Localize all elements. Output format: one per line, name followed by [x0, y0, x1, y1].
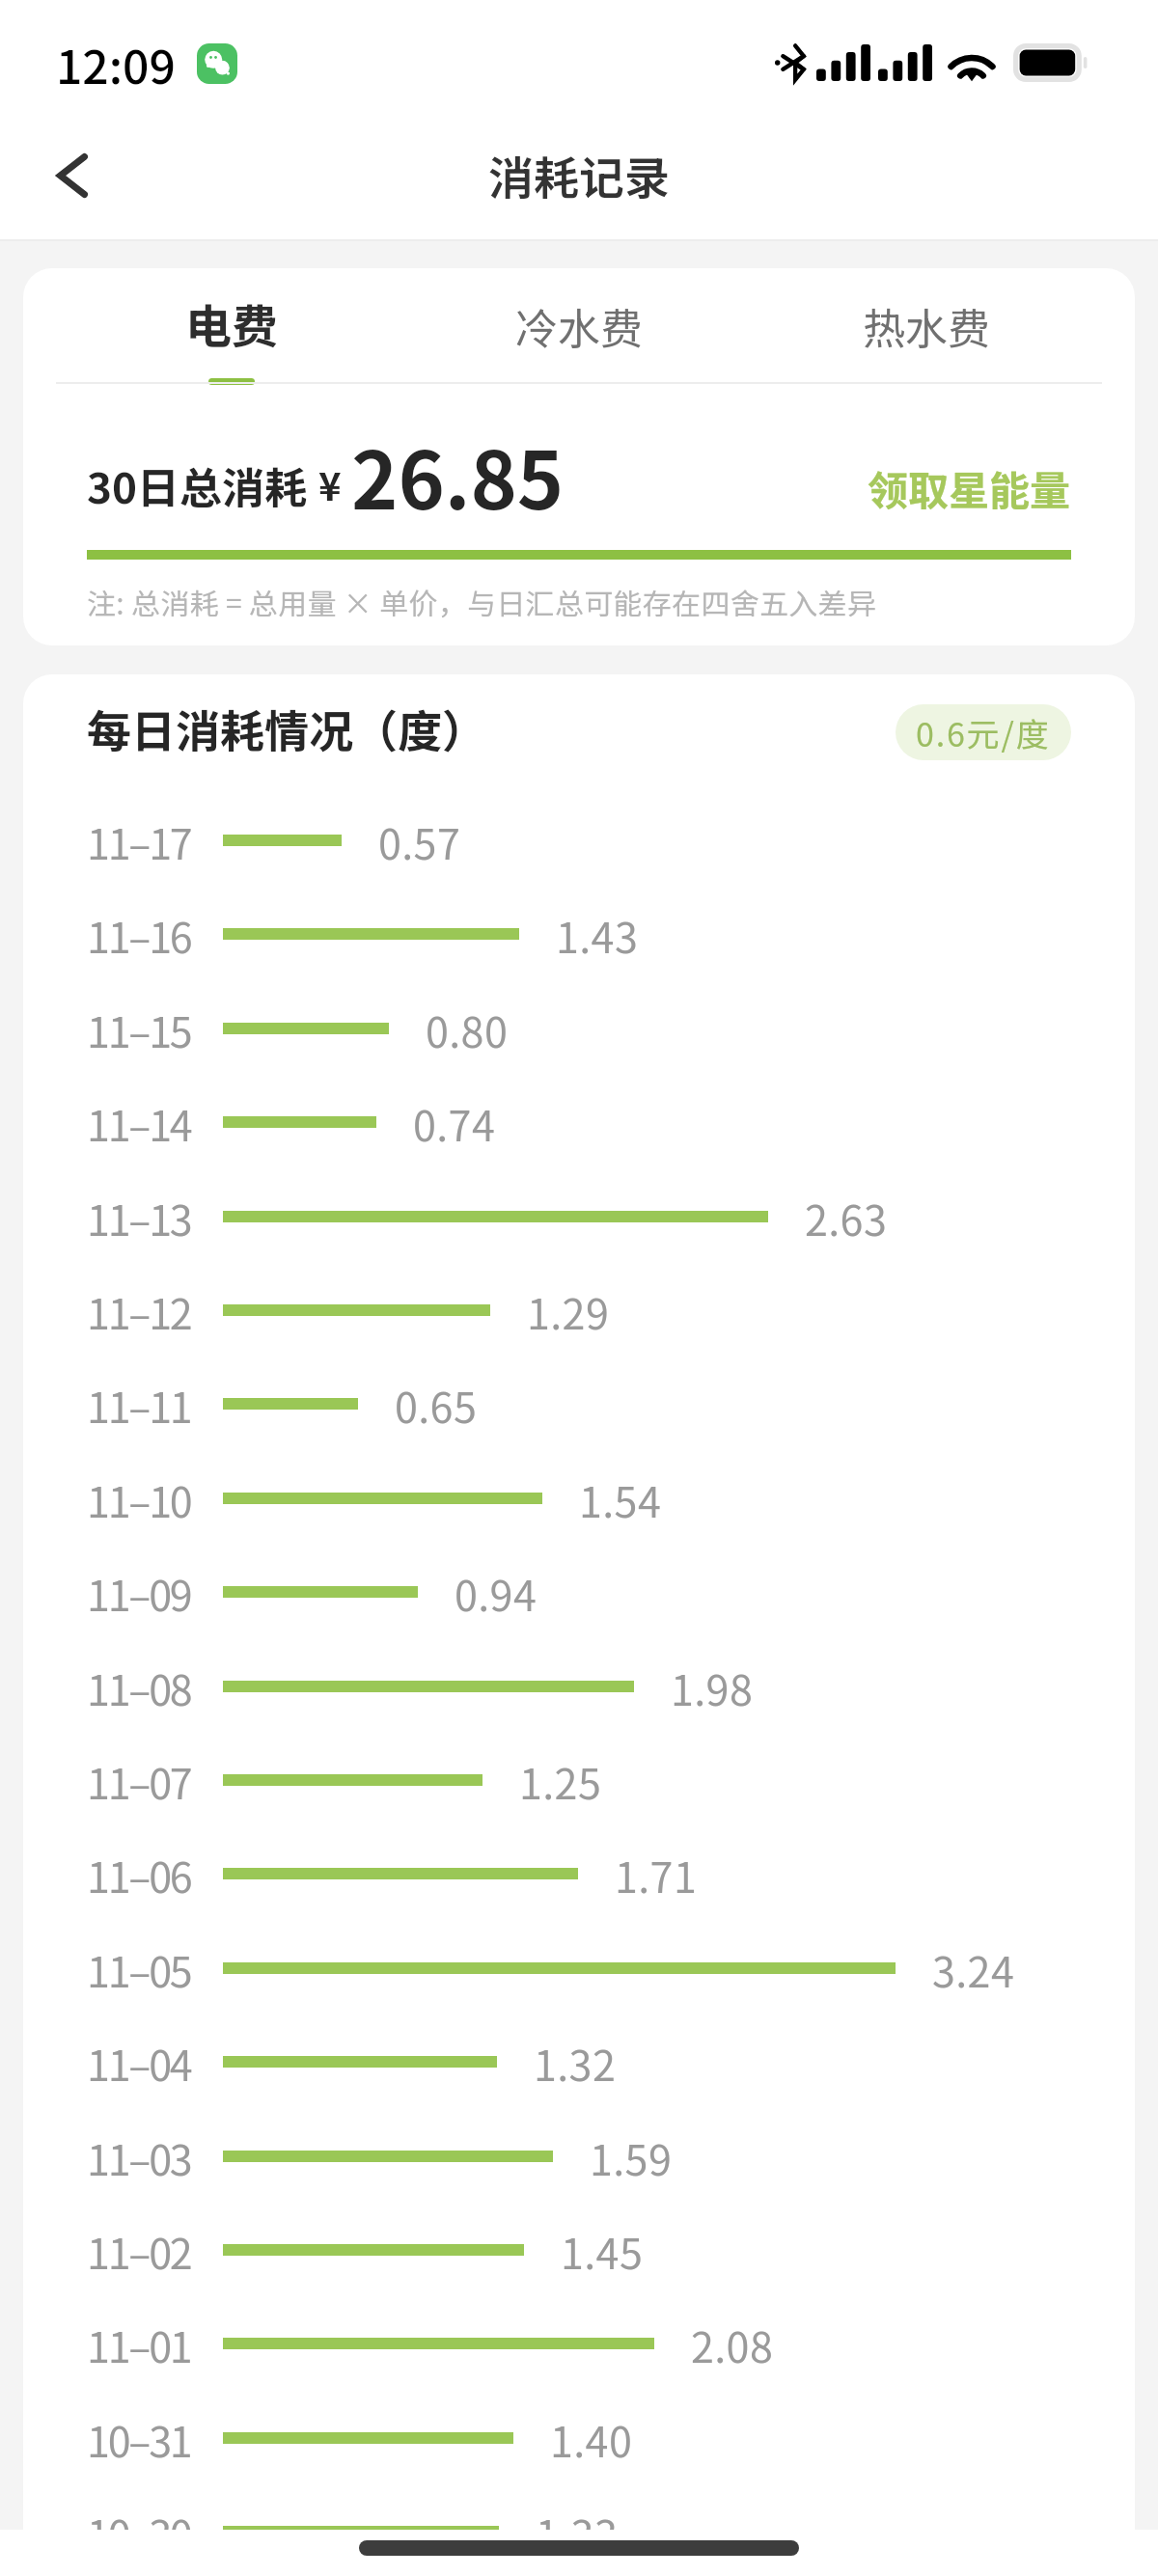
- staticText: 0.74: [413, 1093, 496, 1153]
- staticText: 11–01: [87, 2315, 191, 2374]
- button[interactable]: 热水费: [753, 268, 1100, 384]
- staticText: 11–10: [87, 1469, 191, 1529]
- staticText: 冷水费: [515, 295, 643, 357]
- staticText: 11–15: [87, 1000, 191, 1059]
- staticText: 电费: [185, 289, 279, 357]
- staticText: 0.65: [395, 1375, 478, 1435]
- staticText: 11–11: [87, 1375, 191, 1435]
- staticText: 11–12: [87, 1281, 191, 1341]
- button[interactable]: 电费: [58, 268, 405, 384]
- staticText: 1.29: [527, 1281, 610, 1341]
- staticText: 10–31: [87, 2409, 191, 2469]
- staticText: 0.80: [426, 1000, 509, 1059]
- staticText: 热水费: [863, 295, 990, 357]
- button[interactable]: Back: [0, 120, 145, 241]
- staticText: 11–14: [87, 1093, 191, 1153]
- staticText: 11–09: [87, 1563, 191, 1623]
- staticText: 11–16: [87, 905, 191, 965]
- staticText: 11–08: [87, 1658, 191, 1717]
- staticText: 2.08: [691, 2315, 774, 2374]
- staticText: ¥: [318, 456, 342, 512]
- staticText: 1.54: [579, 1469, 662, 1529]
- staticText: 11–04: [87, 2033, 191, 2093]
- staticText: 1.71: [615, 1845, 698, 1905]
- staticText: 0.57: [378, 811, 461, 871]
- staticText: 11–07: [87, 1751, 191, 1811]
- staticText: 11–05: [87, 1939, 191, 1999]
- staticText: 领取星能量: [868, 458, 1071, 517]
- staticText: 1.33: [536, 2503, 619, 2562]
- staticText: 2.63: [805, 1188, 888, 1247]
- staticText: 11–02: [87, 2221, 191, 2281]
- staticText: 1.43: [556, 905, 639, 965]
- button[interactable]: 冷水费: [405, 268, 753, 384]
- staticText: 10–30: [87, 2503, 191, 2562]
- staticText: 消耗记录: [488, 142, 670, 207]
- staticText: 每日消耗情况（度）: [87, 697, 486, 761]
- staticText: 11–06: [87, 1845, 191, 1905]
- staticText: 1.25: [519, 1751, 602, 1811]
- staticText: 12:09: [56, 30, 176, 97]
- staticText: 0.94: [455, 1563, 538, 1623]
- staticText: 11–17: [87, 811, 191, 871]
- staticText: 1.40: [550, 2409, 633, 2469]
- staticText: 1.32: [534, 2033, 617, 2093]
- staticText: 注: 总消耗 = 总用量 × 单价，与日汇总可能存在四舍五入差异: [87, 581, 877, 622]
- staticText: 26.85: [351, 418, 565, 533]
- staticText: 1.59: [590, 2127, 673, 2187]
- staticText: 1.98: [671, 1658, 754, 1717]
- staticText: 11–13: [87, 1188, 191, 1247]
- staticText: 1.45: [561, 2221, 644, 2281]
- staticText: 11–03: [87, 2127, 191, 2187]
- staticText: 0.6元/度: [916, 709, 1051, 756]
- button[interactable]: 0.6元/度: [896, 704, 1071, 760]
- staticText: 3.24: [932, 1939, 1015, 1999]
- staticText: 30日总消耗: [87, 454, 307, 516]
- button[interactable]: 领取星能量: [868, 458, 1071, 517]
